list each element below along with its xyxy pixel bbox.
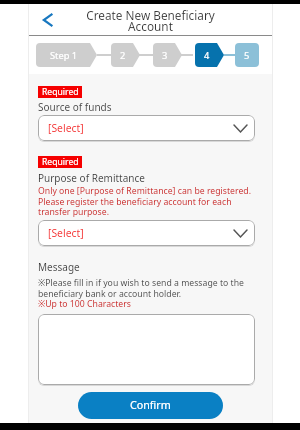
- staticText: Required: [42, 156, 79, 168]
- button[interactable]: [Select]: [38, 115, 255, 141]
- staticText: 5: [244, 49, 250, 62]
- button[interactable]: Confirm: [78, 392, 223, 419]
- staticText: Message: [38, 260, 80, 274]
- staticText: Source of funds: [38, 100, 112, 114]
- staticText: ※Please fill in if you wish to send a me…: [38, 277, 244, 300]
- button[interactable]: [38, 314, 255, 385]
- button[interactable]: [Select]: [38, 220, 255, 246]
- button[interactable]: Back: [36, 8, 60, 32]
- staticText: Only one [Purpose of Remittance] can be …: [38, 185, 251, 218]
- staticText: 4: [204, 49, 210, 62]
- staticText: Create New Beneficiary Account: [86, 7, 215, 34]
- staticText: Step 1: [50, 49, 78, 62]
- staticText: [Select]: [48, 121, 84, 135]
- staticText: Required: [42, 86, 79, 98]
- staticText: Purpose of Remittance: [38, 171, 145, 185]
- staticText: [Select]: [48, 226, 84, 240]
- staticText: ※Up to 100 Characters: [38, 298, 132, 310]
- staticText: 3: [162, 49, 168, 62]
- staticText: 2: [120, 49, 126, 62]
- staticText: Confirm: [130, 398, 171, 413]
